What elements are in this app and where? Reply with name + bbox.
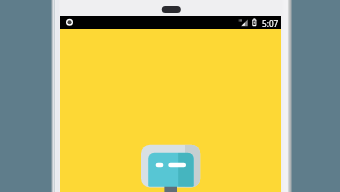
staticText: 5:07	[262, 18, 279, 29]
button[interactable]: Empty inbox illustration	[141, 144, 201, 192]
button[interactable]: Notification	[64, 16, 77, 29]
